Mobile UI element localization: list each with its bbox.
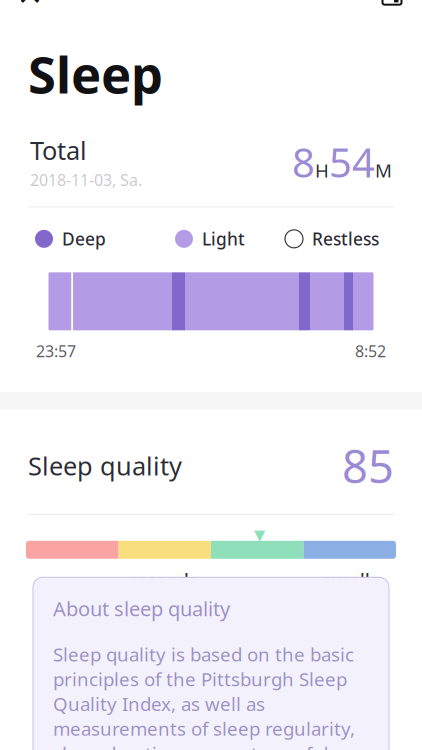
staticText: About sleep quality	[53, 595, 230, 622]
staticText: Restless	[312, 227, 379, 250]
staticText: Deep	[62, 227, 106, 250]
staticText: Light	[202, 227, 245, 250]
staticText: ✕	[16, 0, 43, 12]
staticText: 8:52	[355, 340, 386, 362]
staticText: M	[375, 158, 392, 183]
staticText: Sleep quality is based on the basic prin…	[53, 642, 361, 750]
staticText: 54	[329, 135, 375, 188]
staticText: 85	[342, 436, 394, 496]
staticText: 2018-11-03, Sa.	[30, 169, 142, 190]
staticText: Sleep	[28, 40, 163, 107]
staticText: 23:57	[36, 340, 76, 362]
staticText: ▼	[254, 526, 265, 543]
staticText: H	[315, 158, 329, 183]
staticText: 8	[292, 135, 315, 188]
staticText: Total	[30, 133, 87, 167]
staticText: excellent	[322, 569, 386, 615]
button[interactable]: Calendar	[370, 0, 414, 16]
staticText: Poor	[45, 580, 85, 603]
button[interactable]: Close	[8, 0, 52, 16]
staticText: Sleep quality	[28, 449, 182, 482]
staticText: secondary	[129, 569, 205, 615]
staticText: 75	[211, 580, 231, 603]
